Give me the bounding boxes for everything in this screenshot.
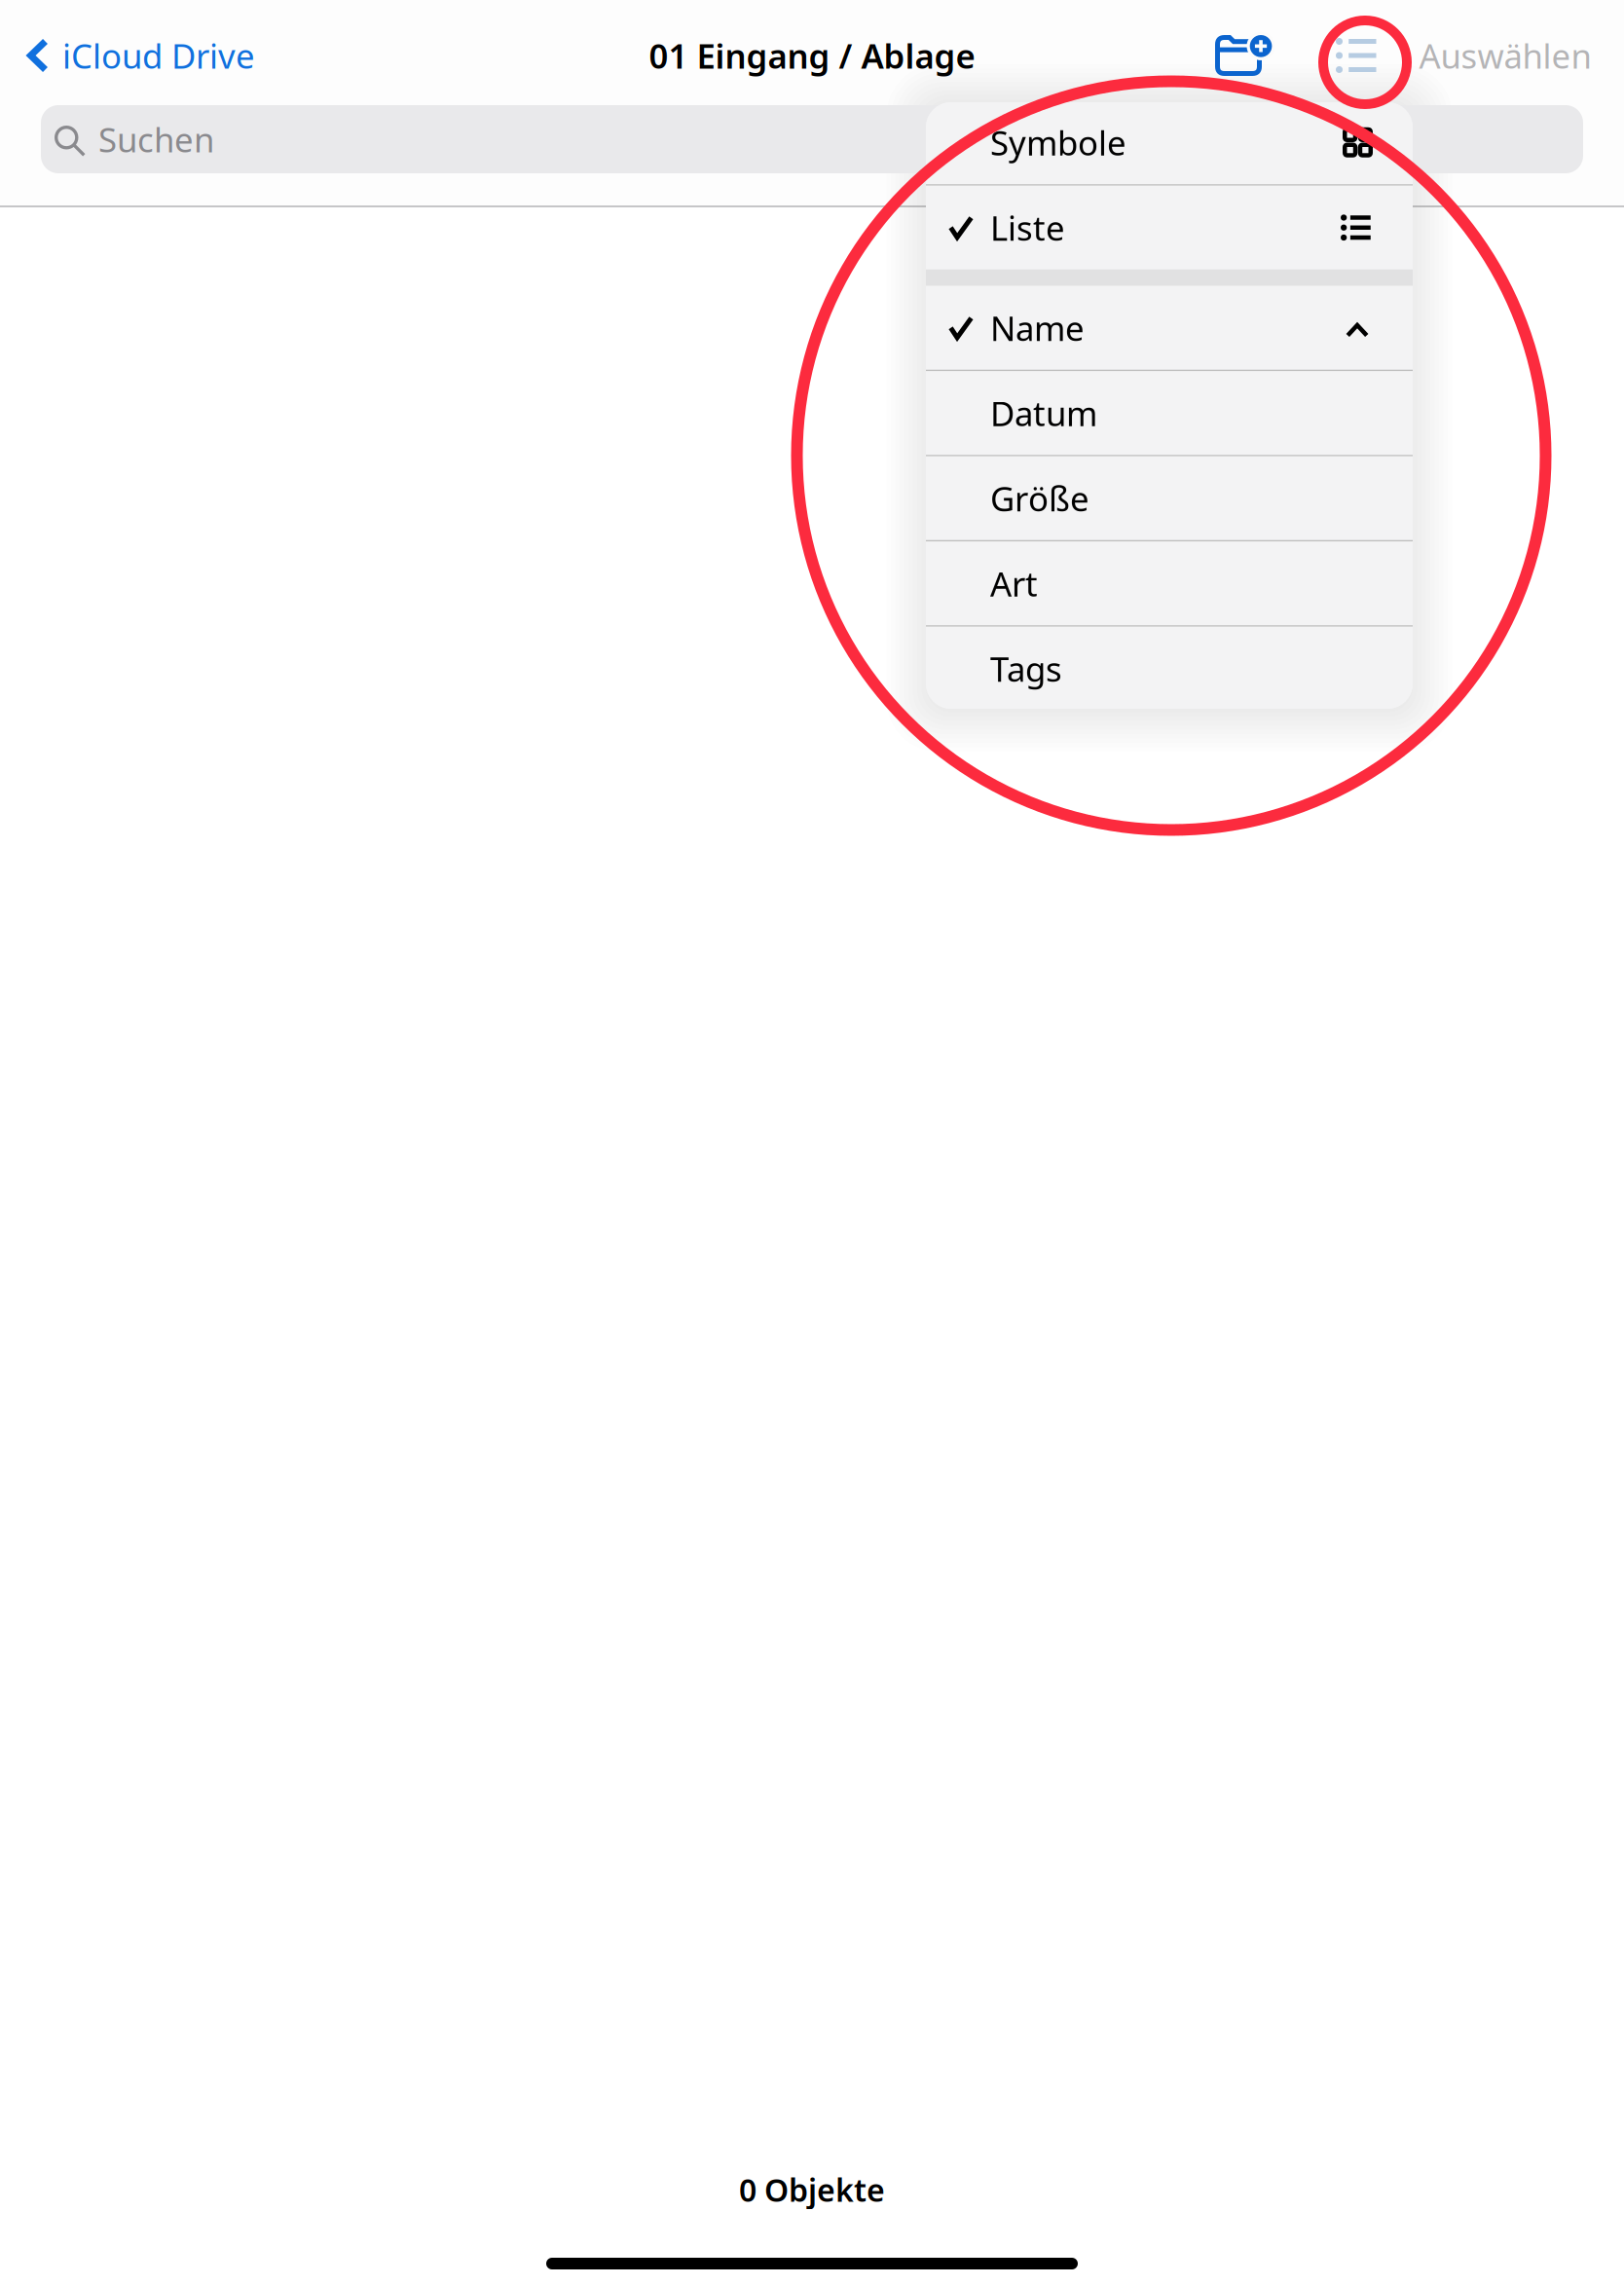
staticText: Symbole — [990, 120, 1126, 165]
staticText: Größe — [990, 476, 1089, 521]
staticText: 0 Objekte — [739, 2169, 885, 2210]
button[interactable]: Tags — [926, 627, 1413, 711]
staticText: Auswählen — [1419, 33, 1591, 78]
button[interactable]: iCloud Drive — [0, 14, 280, 97]
button[interactable]: Liste — [926, 186, 1413, 269]
staticText: Name — [990, 305, 1085, 350]
button[interactable]: Auswählen — [1396, 14, 1615, 97]
button[interactable]: Neuer Ordner — [1195, 15, 1282, 96]
button[interactable]: Name — [926, 286, 1413, 370]
staticText: Datum — [990, 391, 1097, 435]
staticText: Liste — [990, 205, 1065, 250]
staticText: Tags — [990, 646, 1062, 691]
staticText: iCloud Drive — [62, 33, 255, 78]
button[interactable]: Symbole — [926, 100, 1413, 184]
button[interactable]: Datum — [926, 371, 1413, 455]
button[interactable]: Suchen — [41, 105, 1583, 173]
staticText: 01 Eingang / Ablage — [649, 33, 975, 78]
button[interactable]: Art — [926, 542, 1413, 625]
staticText: Art — [990, 561, 1038, 606]
button[interactable]: Größe — [926, 456, 1413, 540]
button[interactable]: Darstellung — [1318, 15, 1396, 96]
staticText: Suchen — [98, 117, 214, 162]
